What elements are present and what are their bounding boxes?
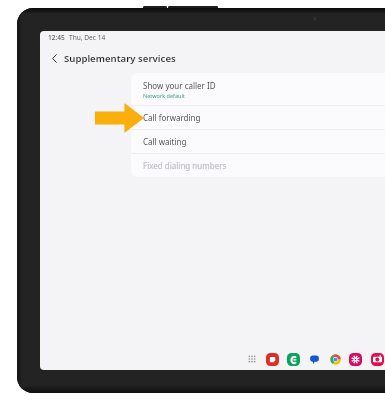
button[interactable]: Call forwarding — [131, 106, 385, 129]
button[interactable]: Back — [47, 51, 61, 65]
button[interactable]: Show your caller ID — [131, 73, 385, 105]
button[interactable]: Notes — [265, 352, 279, 366]
staticText: Call waiting — [143, 136, 187, 147]
button[interactable]: Gallery — [348, 352, 362, 366]
staticText: Thu, Dec 14 — [69, 33, 106, 42]
staticText: Call forwarding — [143, 112, 201, 123]
button[interactable]: Apps — [245, 352, 259, 366]
staticText: Supplementary services — [64, 52, 176, 65]
staticText: Fixed dialing numbers — [143, 160, 227, 171]
button[interactable]: Phone — [286, 352, 300, 366]
staticText: Show your caller ID — [143, 80, 216, 91]
staticText: 12:45 — [48, 33, 65, 42]
button[interactable]: Camera — [370, 352, 384, 366]
button[interactable]: Fixed dialing numbers — [131, 154, 385, 177]
button[interactable]: Chrome — [328, 352, 342, 366]
button[interactable]: Call waiting — [131, 130, 385, 153]
button[interactable]: Messages — [307, 352, 321, 366]
staticText: Network default — [143, 92, 185, 99]
